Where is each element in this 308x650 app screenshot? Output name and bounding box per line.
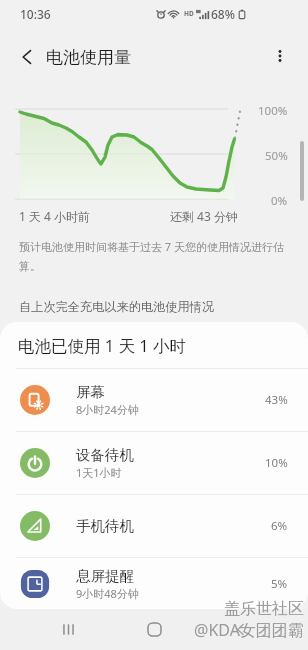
staticText: 息屏提醒 (76, 567, 134, 585)
staticText: 盖乐世社区 (224, 599, 304, 619)
staticText: 设备待机 (76, 446, 134, 464)
button[interactable]: 设备待机 (0, 432, 308, 494)
staticText: @KDA女团团霸 (194, 619, 304, 641)
staticText: 屏幕 (76, 383, 105, 401)
button[interactable]: Recents (46, 609, 90, 650)
staticText: 还剩 43 分钟 (170, 208, 238, 224)
staticText: 手机待机 (76, 517, 134, 535)
staticText: 9小时48分钟 (76, 586, 139, 601)
staticText: 6% (271, 518, 288, 534)
staticText: 1 天 4 小时前 (19, 208, 91, 224)
staticText: 自上次完全充电以来的电池使用情况 (19, 299, 214, 314)
staticText: 10% (265, 455, 288, 471)
staticText: 1天1小时 (76, 465, 122, 480)
staticText: 电池使用量 (46, 47, 131, 68)
staticText: 68% (211, 6, 235, 22)
button[interactable]: 息屏提醒 (0, 558, 308, 609)
staticText: 5% (271, 576, 288, 592)
button[interactable]: Home (132, 609, 176, 650)
staticText: 50% (265, 148, 288, 164)
staticText: 8小时24分钟 (76, 402, 139, 417)
button[interactable]: Back (218, 609, 262, 650)
staticText: 10:36 (20, 6, 51, 22)
staticText: 电池已使用 1 天 1 小时 (18, 334, 187, 357)
button[interactable]: 屏幕 (0, 369, 308, 431)
button[interactable]: More options (263, 39, 297, 73)
button[interactable]: Back (9, 39, 45, 75)
button[interactable]: 手机待机 (0, 495, 308, 557)
staticText: 0% (271, 193, 288, 209)
staticText: HD (184, 9, 194, 18)
staticText: 预计电池使用时间将基于过去 7 天您的使用情况进行估算。 (19, 239, 289, 273)
staticText: 100% (258, 103, 288, 119)
staticText: 43% (265, 392, 288, 408)
